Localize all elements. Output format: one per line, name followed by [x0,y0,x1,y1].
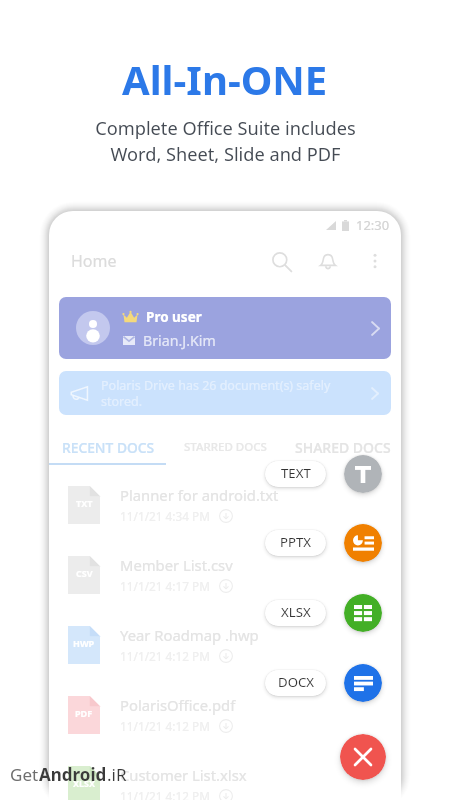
staticText: RECENT DOCS [62,438,155,457]
staticText: All-In-ONE [122,52,328,106]
button[interactable]: Polaris Drive has 26 document(s) safely … [59,371,391,415]
staticText: XLSX [281,603,311,621]
staticText: 11/1/21 4:12 PM [120,648,210,664]
staticText: Brian.J.Kim [143,331,216,350]
button[interactable]: New TEXT document [344,455,382,493]
staticText: Customer List.xlsx [120,765,247,785]
button[interactable]: Close [340,734,386,780]
staticText: Planner for android.txt [120,485,279,505]
staticText: 12:30 [356,216,390,234]
staticText: 11/1/21 4:34 PM [120,508,210,524]
button[interactable]: New DOCX document [344,664,382,702]
staticText: .iR [107,763,127,786]
button[interactable]: TXT [49,470,401,540]
button[interactable]: Pro user [59,297,391,359]
staticText: Home [71,250,117,272]
button[interactable]: TEXT [265,461,326,487]
staticText: XLSX [73,777,96,789]
button[interactable]: SHARED DOCS [284,431,401,463]
staticText: Polaris Drive has 26 document(s) safely … [101,377,365,409]
staticText: Complete Office Suite includes Word, She… [95,116,356,166]
staticText: DOCX [278,673,314,691]
button[interactable]: XLSX [265,600,326,626]
staticText: Member List.csv [120,555,233,575]
staticText: Android [39,763,107,786]
button[interactable]: PPTX [265,530,326,556]
button[interactable]: More options [358,244,392,278]
staticText: HWP [73,637,95,649]
staticText: 11/1/21 4:12 PM [120,718,210,734]
button[interactable]: RECENT DOCS [49,431,167,463]
staticText: STARRED DOCS [184,439,267,455]
button[interactable]: CSV [49,540,401,610]
staticText: 11/1/21 4:12 PM [120,788,210,800]
button[interactable]: Search [264,244,298,278]
button[interactable]: HWP [49,610,401,680]
staticText: 11/1/21 4:17 PM [120,578,210,594]
staticText: Get [10,763,39,786]
button[interactable]: STARRED DOCS [167,431,284,463]
staticText: PDF [75,707,93,719]
staticText: Year Roadmap .hwp [120,625,259,645]
staticText: CSV [76,567,93,579]
staticText: PPTX [280,533,312,551]
button[interactable]: XLSX [49,750,401,800]
staticText: TEXT [281,464,311,482]
button[interactable]: New PPTX document [344,524,382,562]
staticText: TXT [76,497,93,509]
staticText: SHARED DOCS [295,438,391,457]
button[interactable]: New XLSX document [344,594,382,632]
staticText: PolarisOffice.pdf [120,695,236,715]
button[interactable]: PDF [49,680,401,750]
button[interactable]: Notifications [311,244,345,278]
staticText: Pro user [146,308,202,326]
button[interactable]: DOCX [265,670,326,696]
